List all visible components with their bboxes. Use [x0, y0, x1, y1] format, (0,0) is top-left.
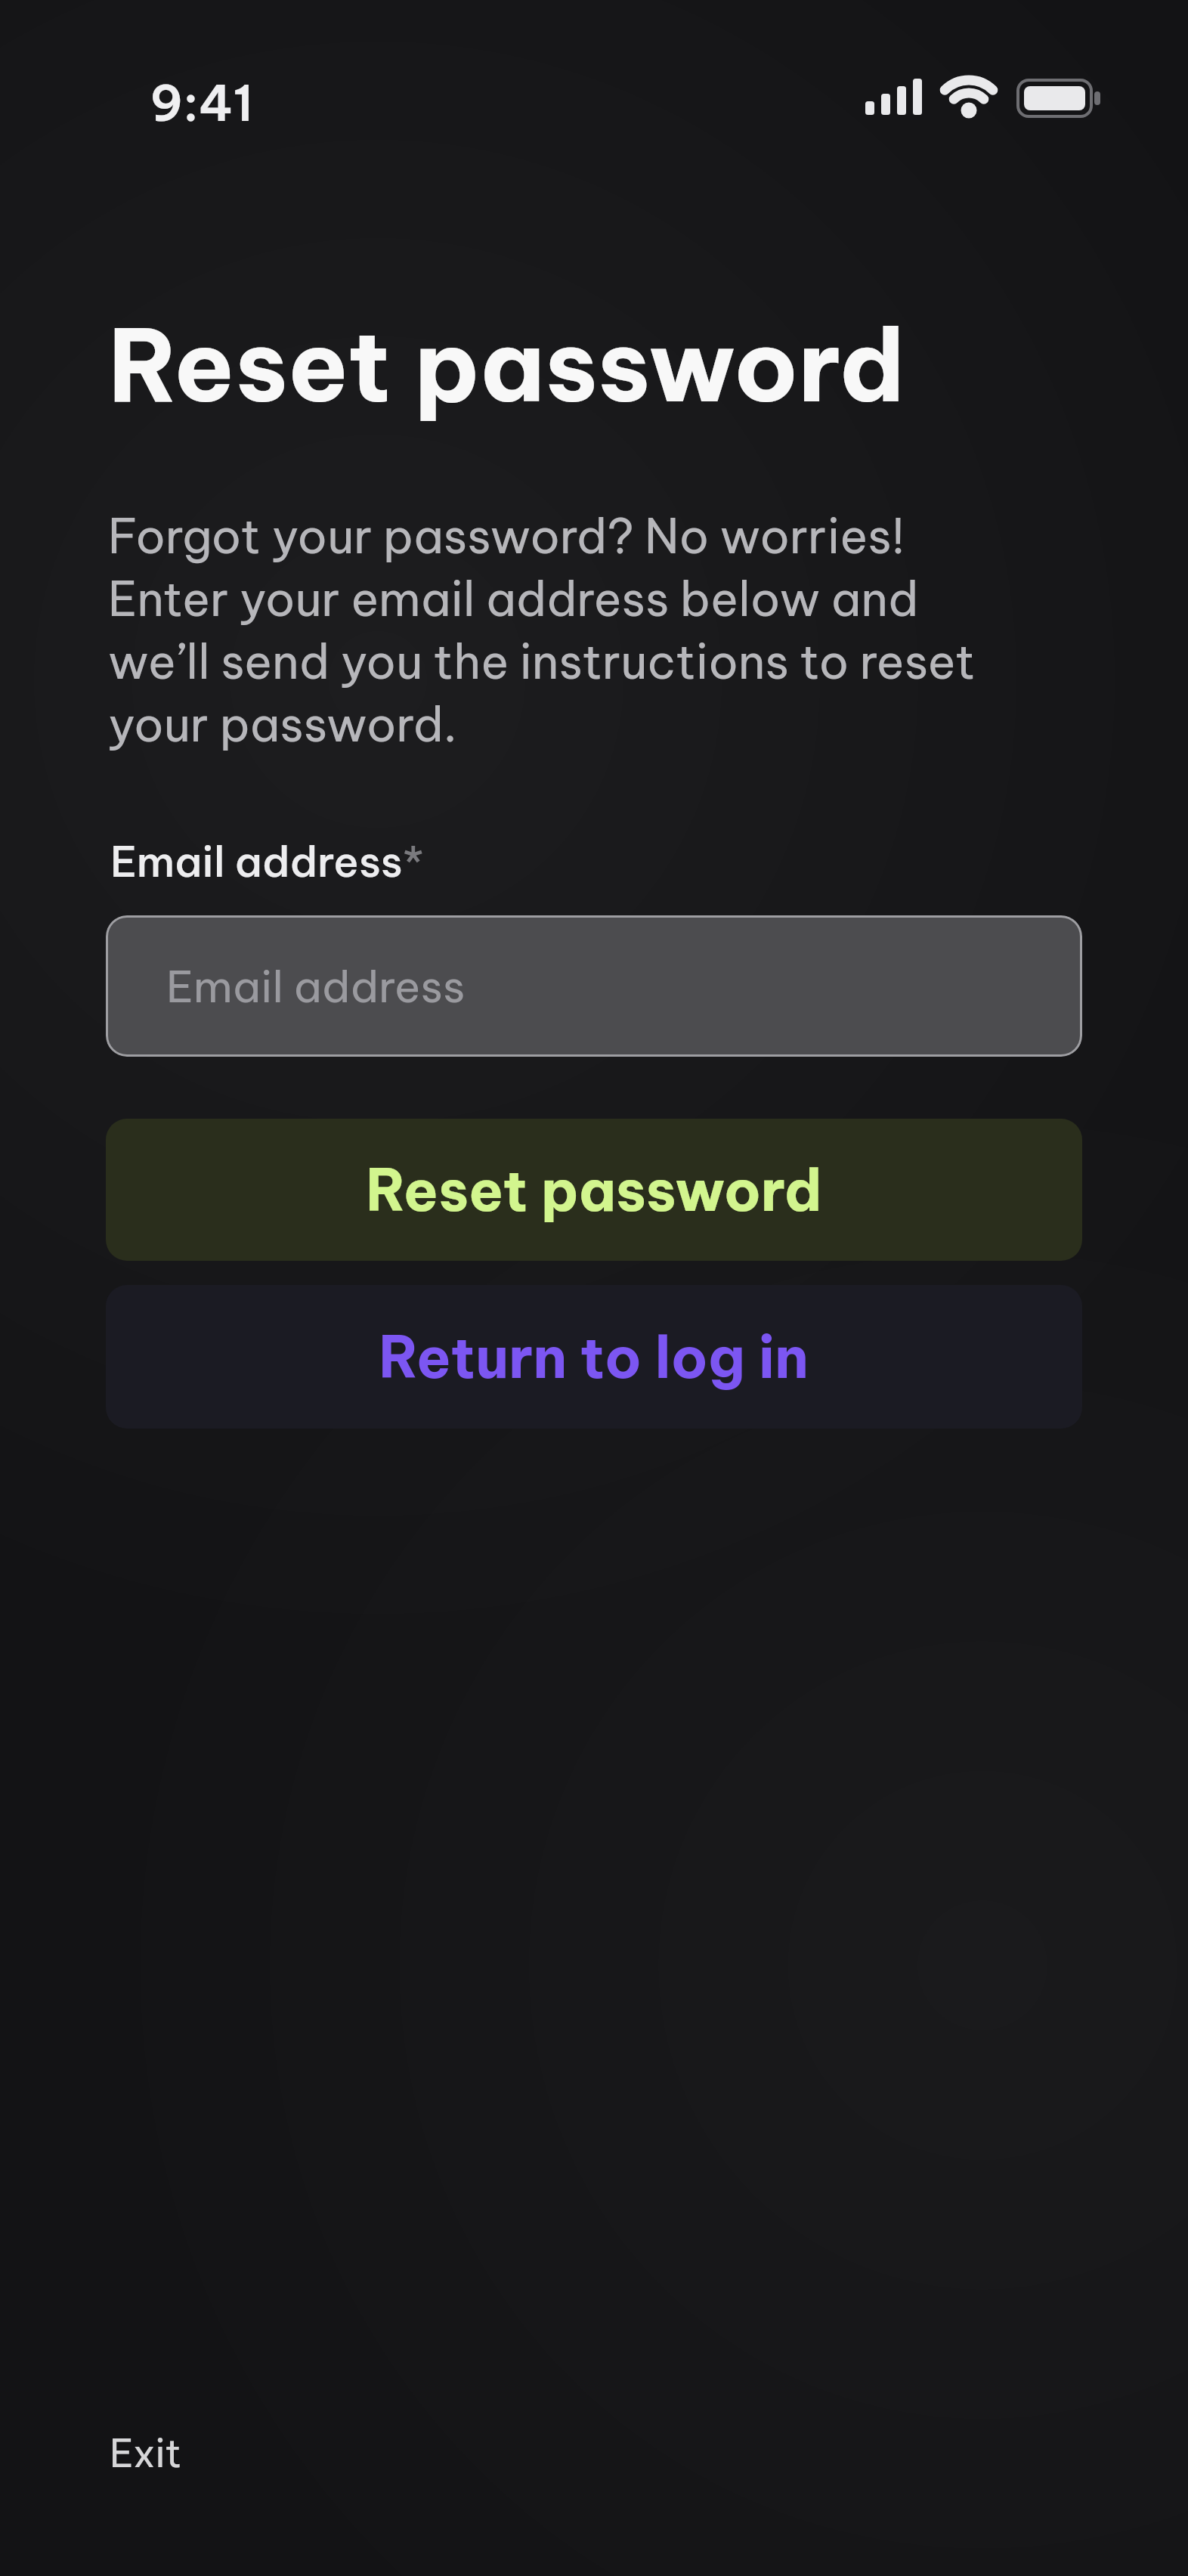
staticText: Return to log in — [379, 1321, 809, 1393]
staticText: Reset password — [366, 1154, 822, 1226]
staticText: Forgot your password? No worries! Enter … — [108, 506, 976, 754]
button[interactable]: Return to log in — [106, 1285, 1082, 1429]
button[interactable]: Reset password — [106, 1119, 1082, 1261]
staticText: Email address — [166, 958, 466, 1014]
button[interactable]: Email address — [106, 915, 1082, 1057]
staticText: Reset password — [108, 302, 905, 428]
button[interactable]: Exit — [110, 2429, 182, 2478]
staticText: Exit — [110, 2429, 182, 2478]
staticText: 9:41 — [150, 73, 254, 134]
staticText: Email address* — [110, 834, 424, 888]
